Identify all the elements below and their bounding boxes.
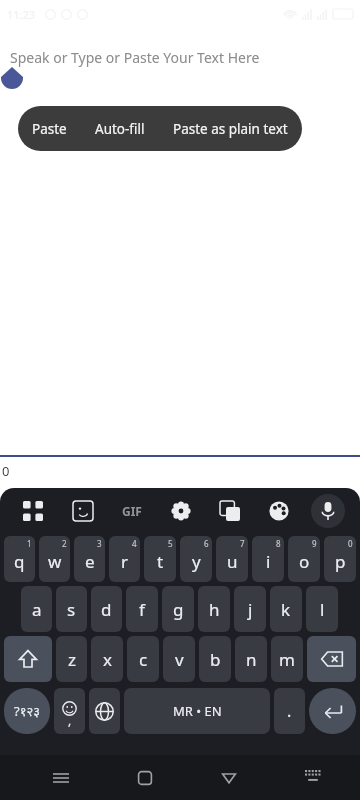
staticText: q: [14, 550, 25, 573]
staticText: d: [101, 598, 112, 621]
button[interactable]: p: [324, 536, 356, 582]
button[interactable]: Settings: [156, 488, 205, 534]
button[interactable]: Backspace: [307, 636, 356, 682]
staticText: f: [139, 598, 145, 621]
button[interactable]: MR • EN: [124, 688, 270, 734]
button[interactable]: Paste: [18, 110, 81, 148]
button[interactable]: Paste as plain text: [159, 110, 302, 148]
button[interactable]: j: [234, 586, 266, 632]
staticText: u: [227, 550, 238, 573]
staticText: s: [67, 598, 76, 621]
button[interactable]: e: [74, 536, 105, 582]
staticText: 1: [27, 538, 32, 549]
button[interactable]: GIF: [107, 503, 156, 519]
button[interactable]: a: [21, 586, 52, 632]
button[interactable]: y: [180, 536, 212, 582]
staticText: 0: [348, 538, 353, 549]
staticText: a: [32, 598, 42, 621]
staticText: b: [210, 648, 221, 671]
staticText: z: [68, 648, 76, 671]
staticText: y: [192, 550, 201, 573]
button[interactable]: i: [252, 536, 284, 582]
staticText: 9: [312, 538, 317, 549]
button[interactable]: Shift: [4, 636, 52, 682]
staticText: e: [85, 550, 95, 573]
button[interactable]: Stickers: [58, 488, 107, 534]
staticText: 4: [132, 538, 137, 549]
button[interactable]: Hide keyboard: [293, 758, 333, 798]
staticText: c: [139, 648, 148, 671]
button[interactable]: Back: [209, 758, 249, 798]
staticText: 2: [62, 538, 67, 549]
button[interactable]: z: [56, 636, 87, 682]
staticText: .: [287, 700, 292, 722]
staticText: h: [209, 598, 220, 621]
staticText: v: [175, 648, 184, 671]
button[interactable]: Auto-fill: [81, 110, 159, 148]
staticText: 5: [168, 538, 173, 549]
staticText: o: [299, 550, 310, 573]
staticText: Auto-fill: [95, 120, 145, 138]
button[interactable]: w: [39, 536, 70, 582]
staticText: ?१२३: [14, 702, 40, 720]
button[interactable]: s: [56, 586, 87, 632]
button[interactable]: t: [144, 536, 176, 582]
button[interactable]: v: [163, 636, 195, 682]
button[interactable]: n: [235, 636, 267, 682]
button[interactable]: Recents: [41, 758, 81, 798]
staticText: 7: [240, 538, 245, 549]
staticText: GIF: [122, 503, 142, 519]
staticText: Paste: [32, 120, 67, 138]
button[interactable]: b: [199, 636, 231, 682]
staticText: ,: [68, 712, 72, 728]
staticText: r: [121, 550, 129, 573]
staticText: 6: [204, 538, 209, 549]
staticText: x: [103, 648, 112, 671]
staticText: t: [157, 550, 164, 573]
button[interactable]: m: [271, 636, 303, 682]
staticText: 8: [276, 538, 281, 549]
button[interactable]: h: [198, 586, 230, 632]
button[interactable]: q: [4, 536, 35, 582]
staticText: Speak or Type or Paste Your Text Here: [10, 48, 260, 67]
button[interactable]: Translate: [205, 488, 254, 534]
button[interactable]: c: [127, 636, 159, 682]
button[interactable]: Emoji: [54, 688, 85, 734]
button[interactable]: Themes: [254, 488, 303, 534]
button[interactable]: ?१२३: [4, 688, 50, 734]
staticText: l: [320, 598, 325, 621]
button[interactable]: Change language: [89, 688, 120, 734]
button[interactable]: Home: [125, 758, 165, 798]
button[interactable]: Apps: [8, 488, 58, 534]
staticText: 3: [97, 538, 102, 549]
button[interactable]: k: [270, 586, 302, 632]
button[interactable]: Voice input: [303, 494, 352, 528]
staticText: n: [246, 648, 257, 671]
button[interactable]: u: [216, 536, 248, 582]
staticText: m: [279, 648, 295, 671]
staticText: j: [248, 598, 253, 621]
staticText: w: [48, 550, 62, 573]
button[interactable]: r: [109, 536, 140, 582]
staticText: 11:23: [7, 7, 36, 22]
staticText: Paste as plain text: [173, 120, 288, 138]
button[interactable]: o: [288, 536, 320, 582]
button[interactable]: Enter: [309, 688, 356, 734]
button[interactable]: g: [162, 586, 194, 632]
staticText: k: [281, 598, 291, 621]
staticText: 0: [2, 462, 10, 480]
button[interactable]: d: [91, 586, 122, 632]
button[interactable]: f: [126, 586, 158, 632]
button[interactable]: l: [306, 586, 338, 632]
staticText: g: [173, 598, 184, 621]
staticText: MR • EN: [173, 702, 222, 720]
button[interactable]: .: [274, 688, 305, 734]
staticText: i: [266, 550, 271, 573]
button[interactable]: x: [91, 636, 123, 682]
staticText: p: [335, 550, 346, 573]
